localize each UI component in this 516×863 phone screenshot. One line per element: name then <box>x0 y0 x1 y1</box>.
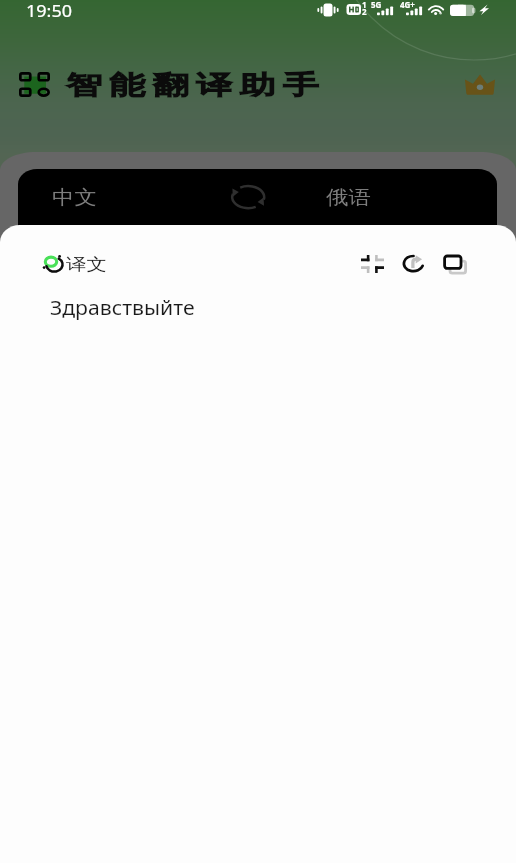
staticText: 中文 <box>52 185 98 210</box>
staticText: 译文 <box>66 254 107 275</box>
button[interactable]: Premium <box>464 74 496 95</box>
button[interactable]: Retranslate <box>403 255 425 273</box>
staticText: 4G+ <box>400 0 415 10</box>
button[interactable]: 译文 <box>36 247 126 277</box>
staticText: Здравствыйте <box>50 294 195 321</box>
button[interactable]: 中文 <box>30 171 170 223</box>
button[interactable]: Apps <box>19 72 50 97</box>
staticText: 19:50 <box>26 0 73 22</box>
button[interactable]: Copy <box>443 255 467 274</box>
button[interactable]: 俄语 <box>298 171 418 223</box>
staticText: 2 <box>362 6 367 17</box>
staticText: 1 <box>362 0 367 10</box>
staticText: 智能翻译助手 <box>66 69 327 102</box>
staticText: 俄语 <box>326 185 372 210</box>
staticText: 5G <box>371 0 382 10</box>
button[interactable]: Swap languages <box>232 186 266 212</box>
button[interactable]: Collapse <box>361 255 384 273</box>
